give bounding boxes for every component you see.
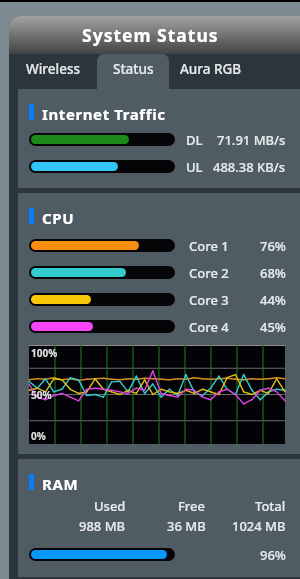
button[interactable]: Status (97, 54, 169, 89)
staticText: Core 3 (189, 291, 229, 309)
staticText: 1024 MB (232, 517, 286, 535)
staticText: Core 2 (189, 264, 229, 282)
staticText: 45% (260, 318, 286, 336)
staticText: 50% (31, 388, 52, 402)
staticText: 988 MB (79, 517, 126, 535)
staticText: 488.38 KB/s (213, 158, 286, 176)
staticText: Used (94, 497, 126, 515)
staticText: DL (186, 131, 203, 149)
staticText: Core 4 (189, 318, 229, 336)
staticText: 71.91 MB/s (217, 131, 286, 149)
staticText: 96% (260, 546, 286, 564)
staticText: Wireless (26, 60, 81, 78)
staticText: 100% (31, 346, 58, 360)
staticText: Internet Traffic (42, 104, 166, 120)
staticText: UL (186, 158, 203, 176)
staticText: Status (113, 60, 154, 78)
staticText: Free (178, 497, 206, 515)
staticText: Core 1 (189, 237, 229, 255)
staticText: 0% (31, 429, 46, 443)
staticText: RAM (42, 474, 79, 490)
staticText: 36 MB (167, 517, 206, 535)
staticText: Total (255, 497, 286, 515)
staticText: Aura RGB (180, 60, 242, 78)
staticText: 76% (260, 237, 286, 255)
staticText: 44% (260, 291, 286, 309)
staticText: System Status (82, 23, 219, 47)
staticText: 68% (260, 264, 286, 282)
button[interactable]: Aura RGB (169, 54, 253, 89)
button[interactable]: Wireless (9, 54, 97, 89)
staticText: CPU (42, 208, 75, 224)
